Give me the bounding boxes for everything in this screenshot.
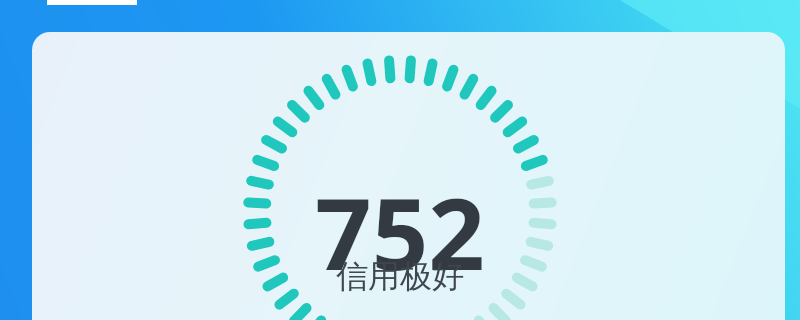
staticText: 752: [200, 164, 600, 274]
button[interactable]: 752: [32, 32, 785, 320]
staticText: 信用极好: [200, 256, 600, 300]
